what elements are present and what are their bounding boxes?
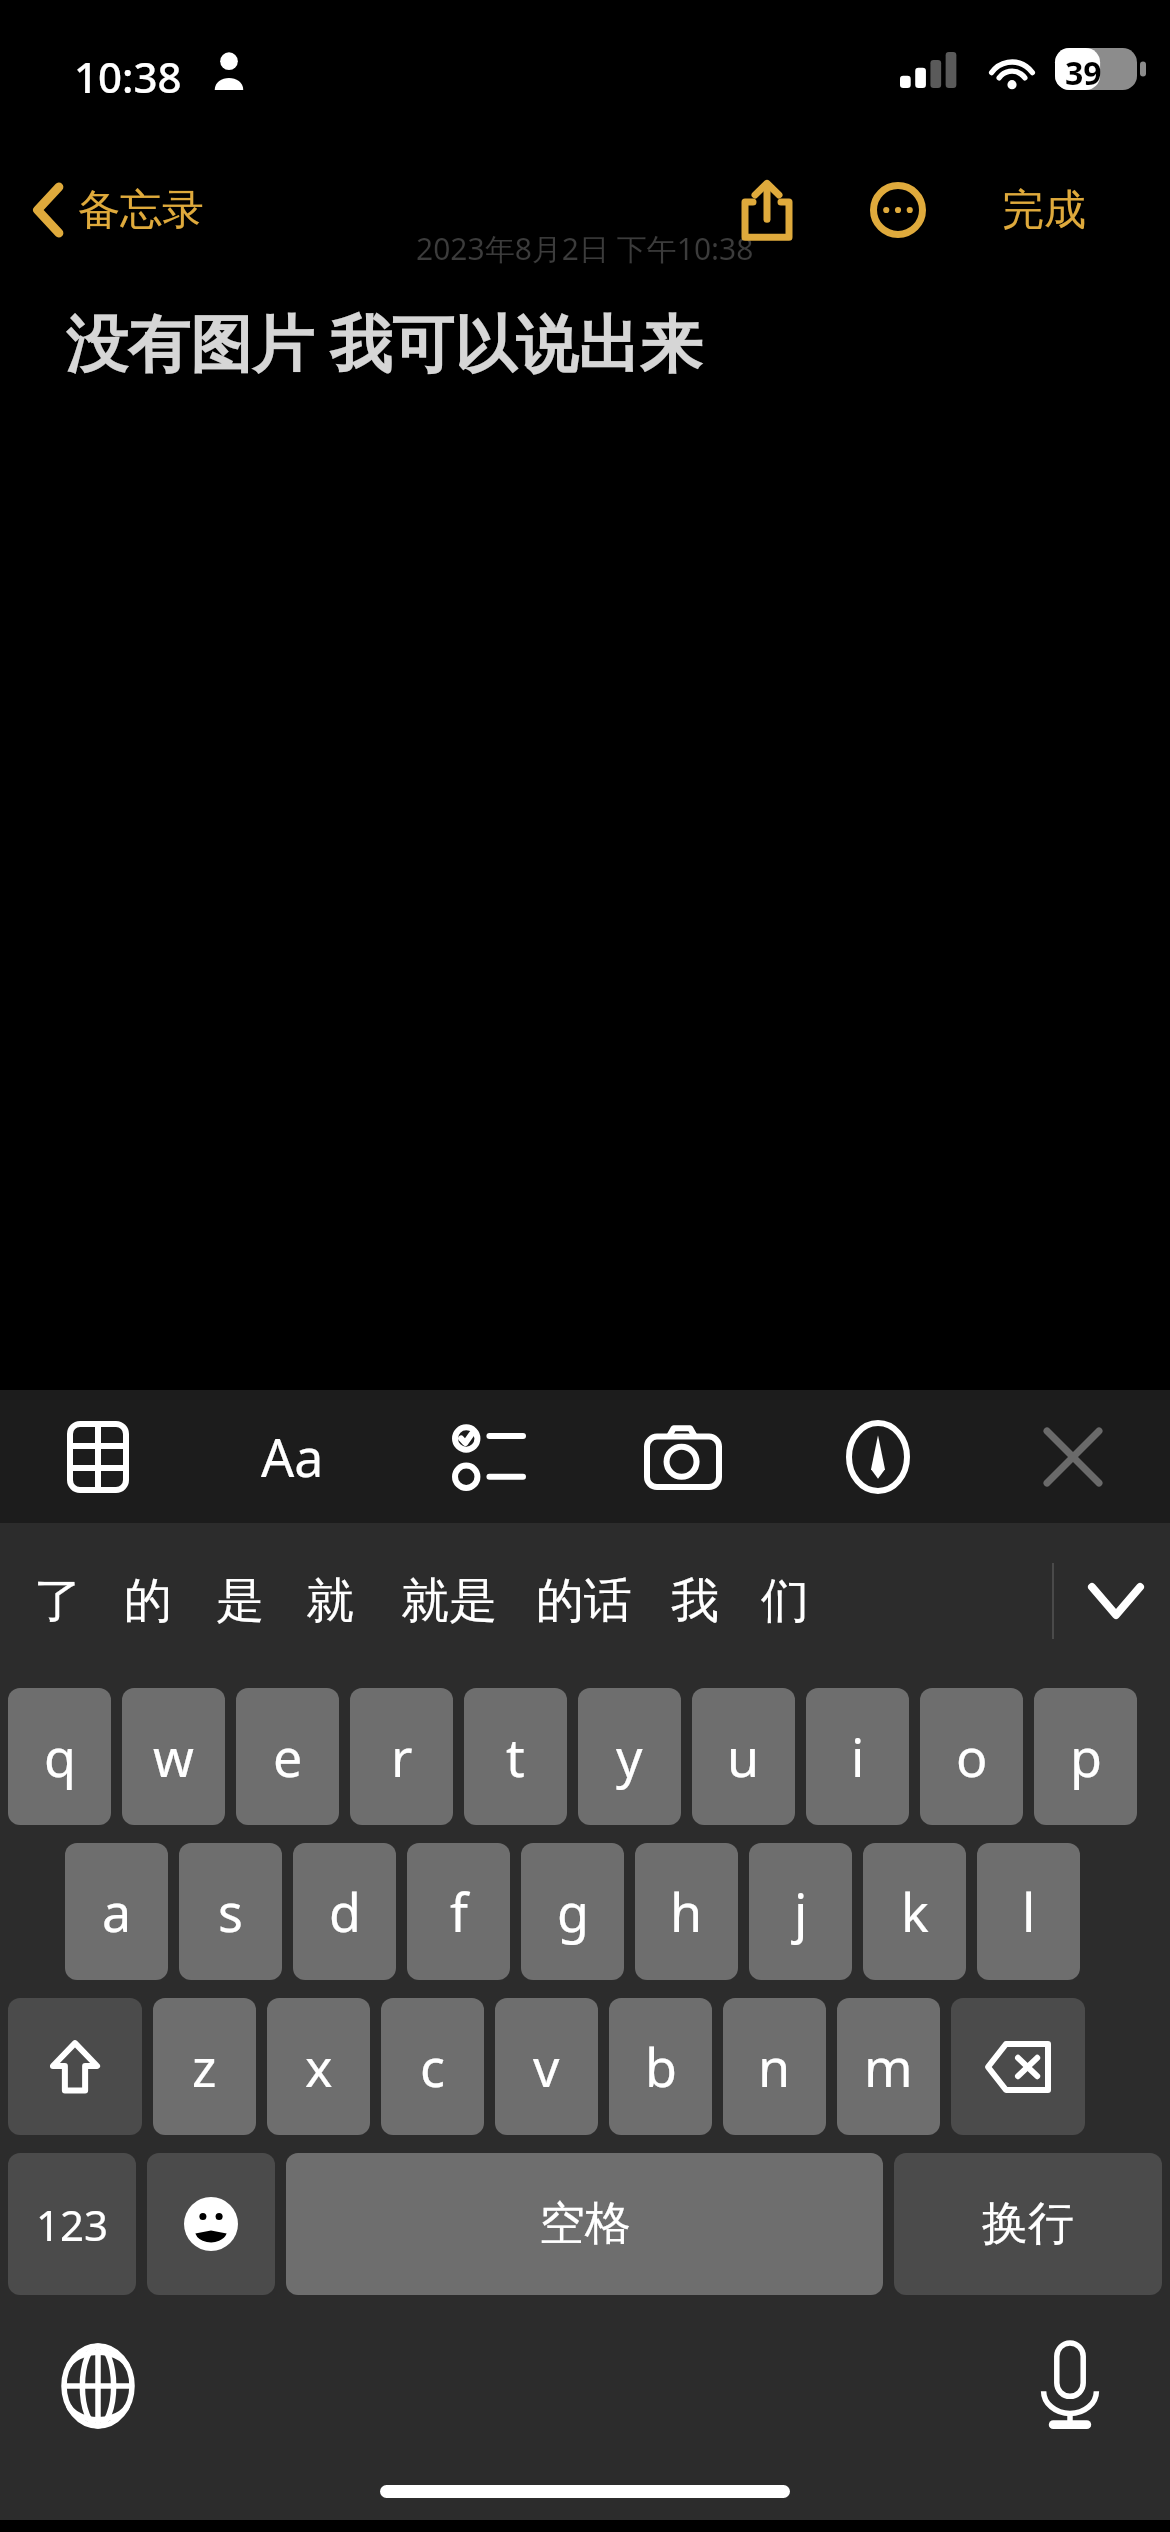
button[interactable]: x <box>267 1998 370 2135</box>
button[interactable]: g <box>521 1843 624 1980</box>
button[interactable]: p <box>1034 1688 1137 1825</box>
button[interactable]: 空格 <box>286 2153 883 2295</box>
staticText: m <box>864 2031 913 2102</box>
staticText: q <box>44 1721 76 1792</box>
button[interactable]: Format <box>195 1390 390 1523</box>
staticText: 们 <box>761 1571 809 1631</box>
button[interactable]: 我 <box>655 1523 735 1678</box>
button[interactable]: Checklist <box>390 1390 585 1523</box>
button[interactable]: Close <box>975 1390 1170 1523</box>
button[interactable]: 换行 <box>894 2153 1162 2295</box>
button[interactable]: u <box>692 1688 795 1825</box>
staticText: a <box>102 1876 132 1947</box>
button[interactable]: f <box>407 1843 510 1980</box>
staticText: 换行 <box>982 2195 1074 2253</box>
staticText: p <box>1070 1721 1102 1792</box>
button[interactable]: More <box>843 155 953 265</box>
staticText: 没有图片 我可以说出来 <box>66 300 703 385</box>
button[interactable]: Camera <box>585 1390 780 1523</box>
staticText: z <box>192 2031 217 2102</box>
staticText: 就 <box>306 1571 354 1631</box>
button[interactable]: z <box>153 1998 256 2135</box>
button[interactable]: Markup <box>780 1390 975 1523</box>
staticText: v <box>533 2031 560 2102</box>
staticText: 的 <box>124 1571 172 1631</box>
button[interactable]: b <box>609 1998 712 2135</box>
button[interactable]: Share <box>712 155 822 265</box>
button[interactable]: 备忘录 <box>22 155 218 265</box>
button[interactable]: k <box>863 1843 966 1980</box>
button[interactable]: Expand candidates <box>1062 1523 1170 1678</box>
staticText: u <box>727 1721 760 1792</box>
button[interactable]: v <box>495 1998 598 2135</box>
button[interactable]: e <box>236 1688 339 1825</box>
button[interactable]: Shift <box>8 1998 142 2135</box>
button[interactable]: i <box>806 1688 909 1825</box>
staticText: Aa <box>261 1421 324 1492</box>
staticText: r <box>391 1721 413 1792</box>
button[interactable]: r <box>350 1688 453 1825</box>
staticText: w <box>153 1721 194 1792</box>
button[interactable]: q <box>8 1688 111 1825</box>
button[interactable]: 了 <box>18 1523 98 1678</box>
button[interactable]: Delete <box>951 1998 1085 2135</box>
staticText: o <box>956 1721 988 1792</box>
staticText: h <box>670 1876 703 1947</box>
button[interactable]: 就 <box>290 1523 370 1678</box>
staticText: k <box>901 1876 929 1947</box>
staticText: n <box>758 2031 791 2102</box>
staticText: d <box>329 1876 361 1947</box>
staticText: 2023年8月2日 下午10:38 <box>416 228 754 269</box>
staticText: e <box>273 1721 303 1792</box>
staticText: f <box>450 1876 468 1947</box>
button[interactable]: 们 <box>745 1523 825 1678</box>
button[interactable]: 完成 <box>980 155 1108 265</box>
staticText: c <box>420 2031 445 2102</box>
button[interactable]: Emoji <box>147 2153 275 2295</box>
staticText: l <box>1022 1876 1036 1947</box>
staticText: t <box>506 1721 525 1792</box>
staticText: j <box>794 1876 808 1947</box>
button[interactable]: 123 <box>8 2153 136 2295</box>
button[interactable]: t <box>464 1688 567 1825</box>
staticText: i <box>851 1721 865 1792</box>
button[interactable]: 的 <box>108 1523 188 1678</box>
staticText: y <box>616 1721 643 1792</box>
button[interactable]: w <box>122 1688 225 1825</box>
button[interactable]: Switch keyboard <box>38 2326 158 2446</box>
button[interactable]: j <box>749 1843 852 1980</box>
staticText: 了 <box>34 1571 82 1631</box>
staticText: g <box>557 1876 589 1947</box>
staticText: 我 <box>671 1571 719 1631</box>
staticText: 的话 <box>536 1571 632 1631</box>
button[interactable]: Dictate <box>1010 2326 1130 2446</box>
button[interactable]: c <box>381 1998 484 2135</box>
staticText: 39 <box>1065 51 1102 95</box>
button[interactable]: 是 <box>200 1523 280 1678</box>
button[interactable]: h <box>635 1843 738 1980</box>
button[interactable]: l <box>977 1843 1080 1980</box>
staticText: 空格 <box>539 2195 631 2253</box>
staticText: 是 <box>216 1571 264 1631</box>
button[interactable]: n <box>723 1998 826 2135</box>
button[interactable]: s <box>179 1843 282 1980</box>
staticText: b <box>645 2031 677 2102</box>
button[interactable]: 的话 <box>520 1523 648 1678</box>
button[interactable]: m <box>837 1998 940 2135</box>
staticText: s <box>218 1876 243 1947</box>
button[interactable]: o <box>920 1688 1023 1825</box>
button[interactable]: y <box>578 1688 681 1825</box>
button[interactable]: Table <box>0 1390 195 1523</box>
button[interactable]: a <box>65 1843 168 1980</box>
button[interactable]: d <box>293 1843 396 1980</box>
staticText: x <box>305 2031 333 2102</box>
staticText: 完成 <box>1002 184 1086 237</box>
button[interactable]: 就是 <box>385 1523 513 1678</box>
staticText: 10:38 <box>74 48 182 105</box>
staticText: 就是 <box>401 1571 497 1631</box>
staticText: 备忘录 <box>78 184 204 237</box>
staticText: 123 <box>36 2196 109 2253</box>
